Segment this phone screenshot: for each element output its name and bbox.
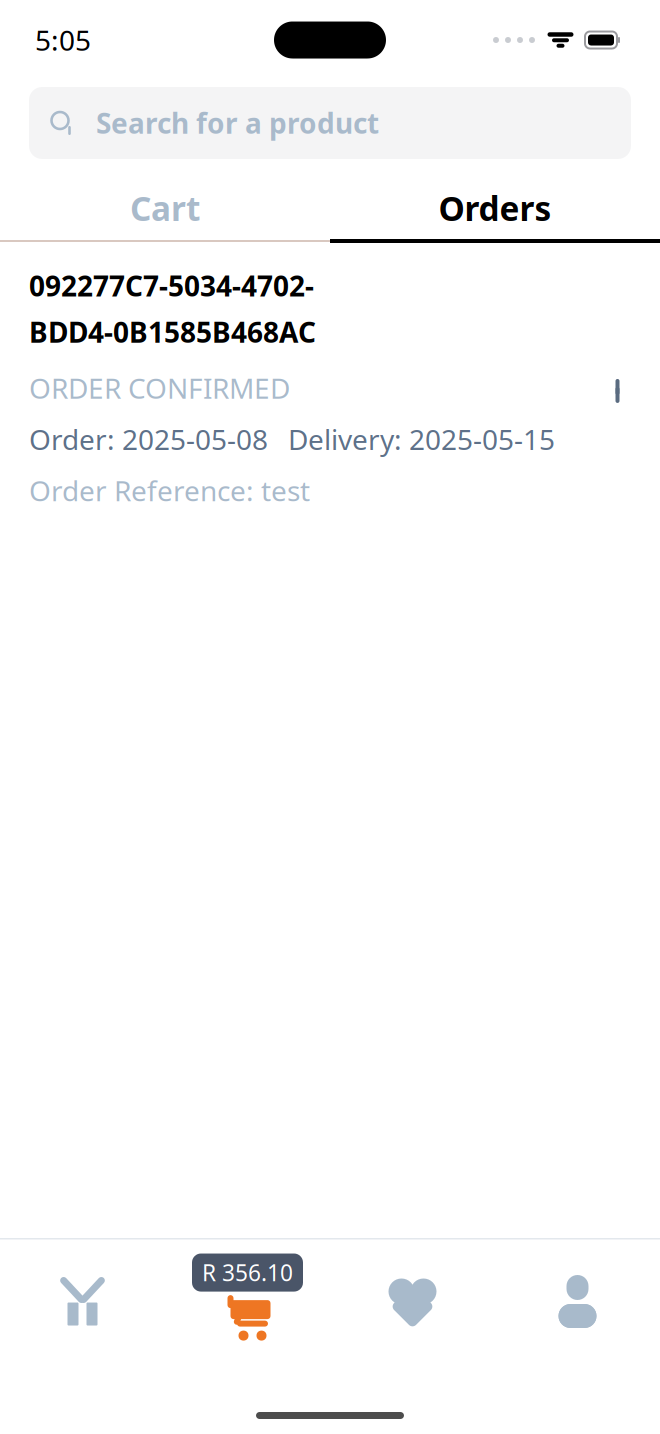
staticText: BDD4-0B1585B468AC xyxy=(29,313,316,350)
button[interactable]: Cart xyxy=(0,177,330,239)
staticText: Orders xyxy=(438,186,551,230)
button[interactable]: 092277C7-5034-4702- xyxy=(29,243,631,509)
button[interactable]: Orders xyxy=(330,177,660,239)
button[interactable]: Cart, R 356.10 xyxy=(165,1253,330,1349)
staticText: Delivery: 2025-05-15 xyxy=(288,420,555,458)
staticText: Search for a product xyxy=(96,104,379,142)
button[interactable]: Search for a product xyxy=(29,87,631,159)
button[interactable]: Home xyxy=(0,1253,165,1349)
staticText: ORDER CONFIRMED xyxy=(29,369,290,407)
staticText: Order: 2025-05-08 xyxy=(29,420,268,458)
staticText: 092277C7-5034-4702- xyxy=(29,267,314,304)
button[interactable]: Favourites xyxy=(330,1253,495,1349)
button[interactable]: Account xyxy=(495,1253,660,1349)
staticText: Order Reference: test xyxy=(29,472,310,509)
staticText: 5:05 xyxy=(35,21,91,59)
staticText: R 356.10 xyxy=(202,1257,293,1288)
staticText: Cart xyxy=(130,186,200,230)
